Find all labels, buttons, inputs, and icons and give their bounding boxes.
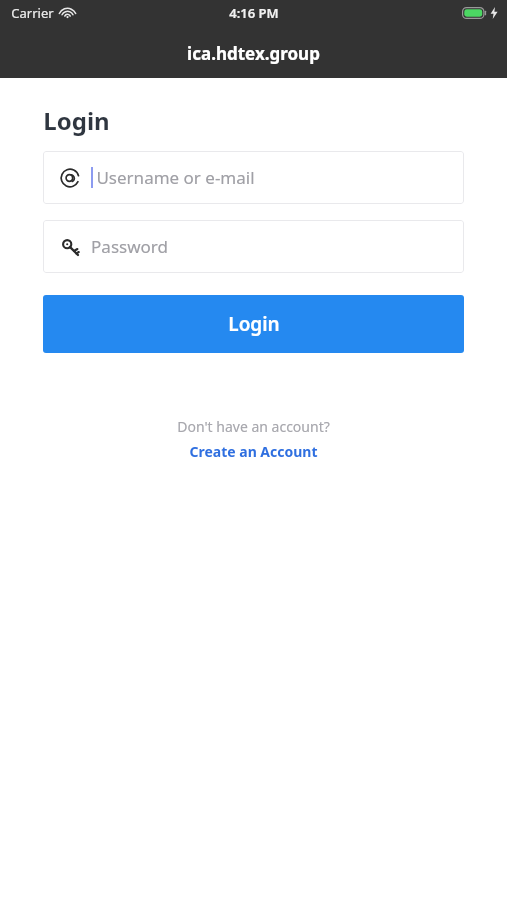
staticText: Don't have an account?: [177, 417, 330, 436]
staticText: Username or e-mail: [96, 166, 255, 189]
staticText: 4:16 PM: [229, 4, 279, 22]
staticText: Create an Account: [189, 442, 318, 461]
button[interactable]: Username or e-mail: [43, 151, 464, 204]
button[interactable]: Login: [43, 295, 464, 353]
staticText: Carrier: [11, 4, 54, 22]
staticText: Login: [228, 311, 280, 337]
staticText: ica.hdtex.group: [187, 42, 320, 65]
button[interactable]: Password: [43, 220, 464, 273]
staticText: Login: [43, 104, 110, 137]
button[interactable]: Create an Account: [185, 441, 322, 462]
staticText: Password: [91, 235, 168, 258]
